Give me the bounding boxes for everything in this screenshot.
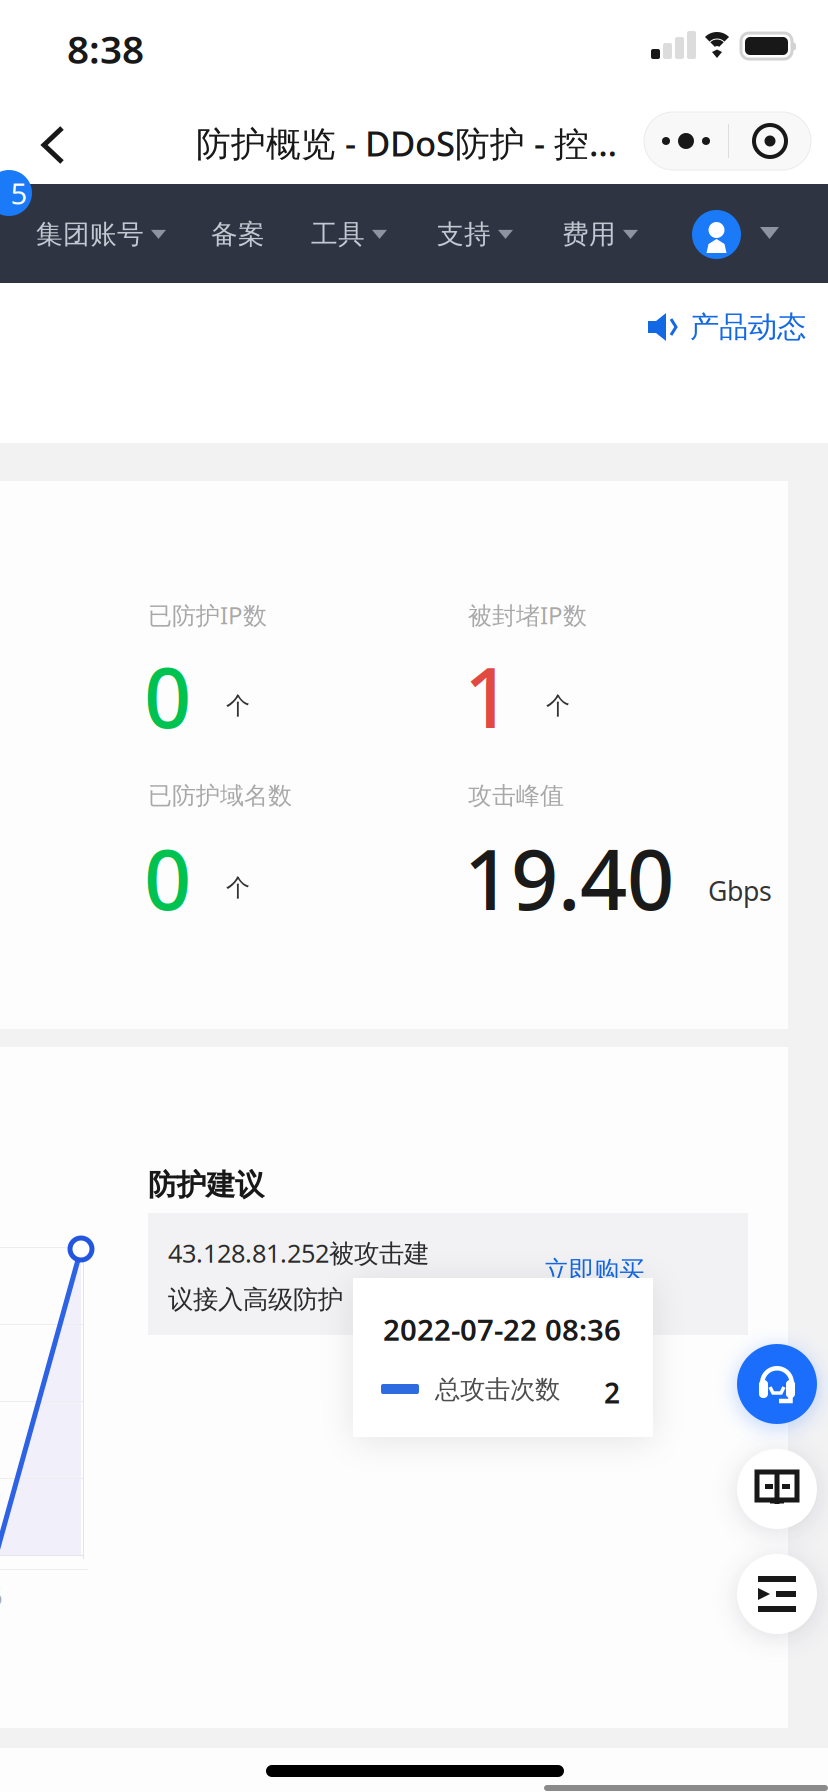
staticText: 5 [10,173,27,212]
staticText: 2 [604,1374,620,1411]
button[interactable]: Account [692,210,741,259]
button[interactable]: Close [729,112,811,170]
staticText: 支持 [437,218,491,251]
staticText: 0 [144,823,191,933]
staticText: 产品动态 [690,309,806,345]
staticText: 被封堵IP数 [468,599,587,631]
button[interactable]: Documentation [737,1449,817,1529]
staticText: 已防护IP数 [148,599,267,631]
button[interactable]: 支持 [437,218,513,251]
button[interactable]: Customer support [737,1344,817,1424]
staticText: 议接入高级防护 [168,1284,343,1315]
staticText: 集团账号 [36,218,144,251]
button[interactable]: Back [18,102,88,188]
staticText: 攻击峰值 [468,781,564,810]
staticText: 个 [226,691,250,720]
staticText: 19.40 [464,823,674,933]
staticText: Gbps [708,873,772,908]
button[interactable]: More [644,112,728,170]
button[interactable]: 集团账号 [36,218,166,251]
staticText: 立即购买 [544,1255,644,1286]
staticText: 防护概览 - DDoS防护 - 控… [196,120,617,166]
staticText: 36 [0,1579,2,1613]
button[interactable]: 工具 [311,218,387,251]
staticText: 个 [546,691,570,720]
button[interactable]: 立即购买 [544,1255,644,1286]
button[interactable]: 费用 [562,218,638,251]
staticText: 43.128.81.252被攻击建 [168,1236,429,1270]
button[interactable]: Account menu [760,227,779,239]
button[interactable]: 产品动态 [648,309,806,345]
staticText: 2022-07-22 08:36 [383,1310,621,1349]
staticText: 8:38 [67,23,144,74]
staticText: 个 [226,873,250,902]
button[interactable]: Menu [737,1554,817,1634]
staticText: 费用 [562,218,616,251]
staticText: 1 [464,641,511,751]
staticText: 0 [144,641,191,751]
staticText: 备案 [211,218,265,251]
staticText: 总攻击次数 [435,1374,560,1405]
staticText: 已防护域名数 [148,781,292,810]
button[interactable]: 备案 [211,218,265,251]
staticText: 防护建议 [148,1167,264,1203]
staticText: 工具 [311,218,365,251]
